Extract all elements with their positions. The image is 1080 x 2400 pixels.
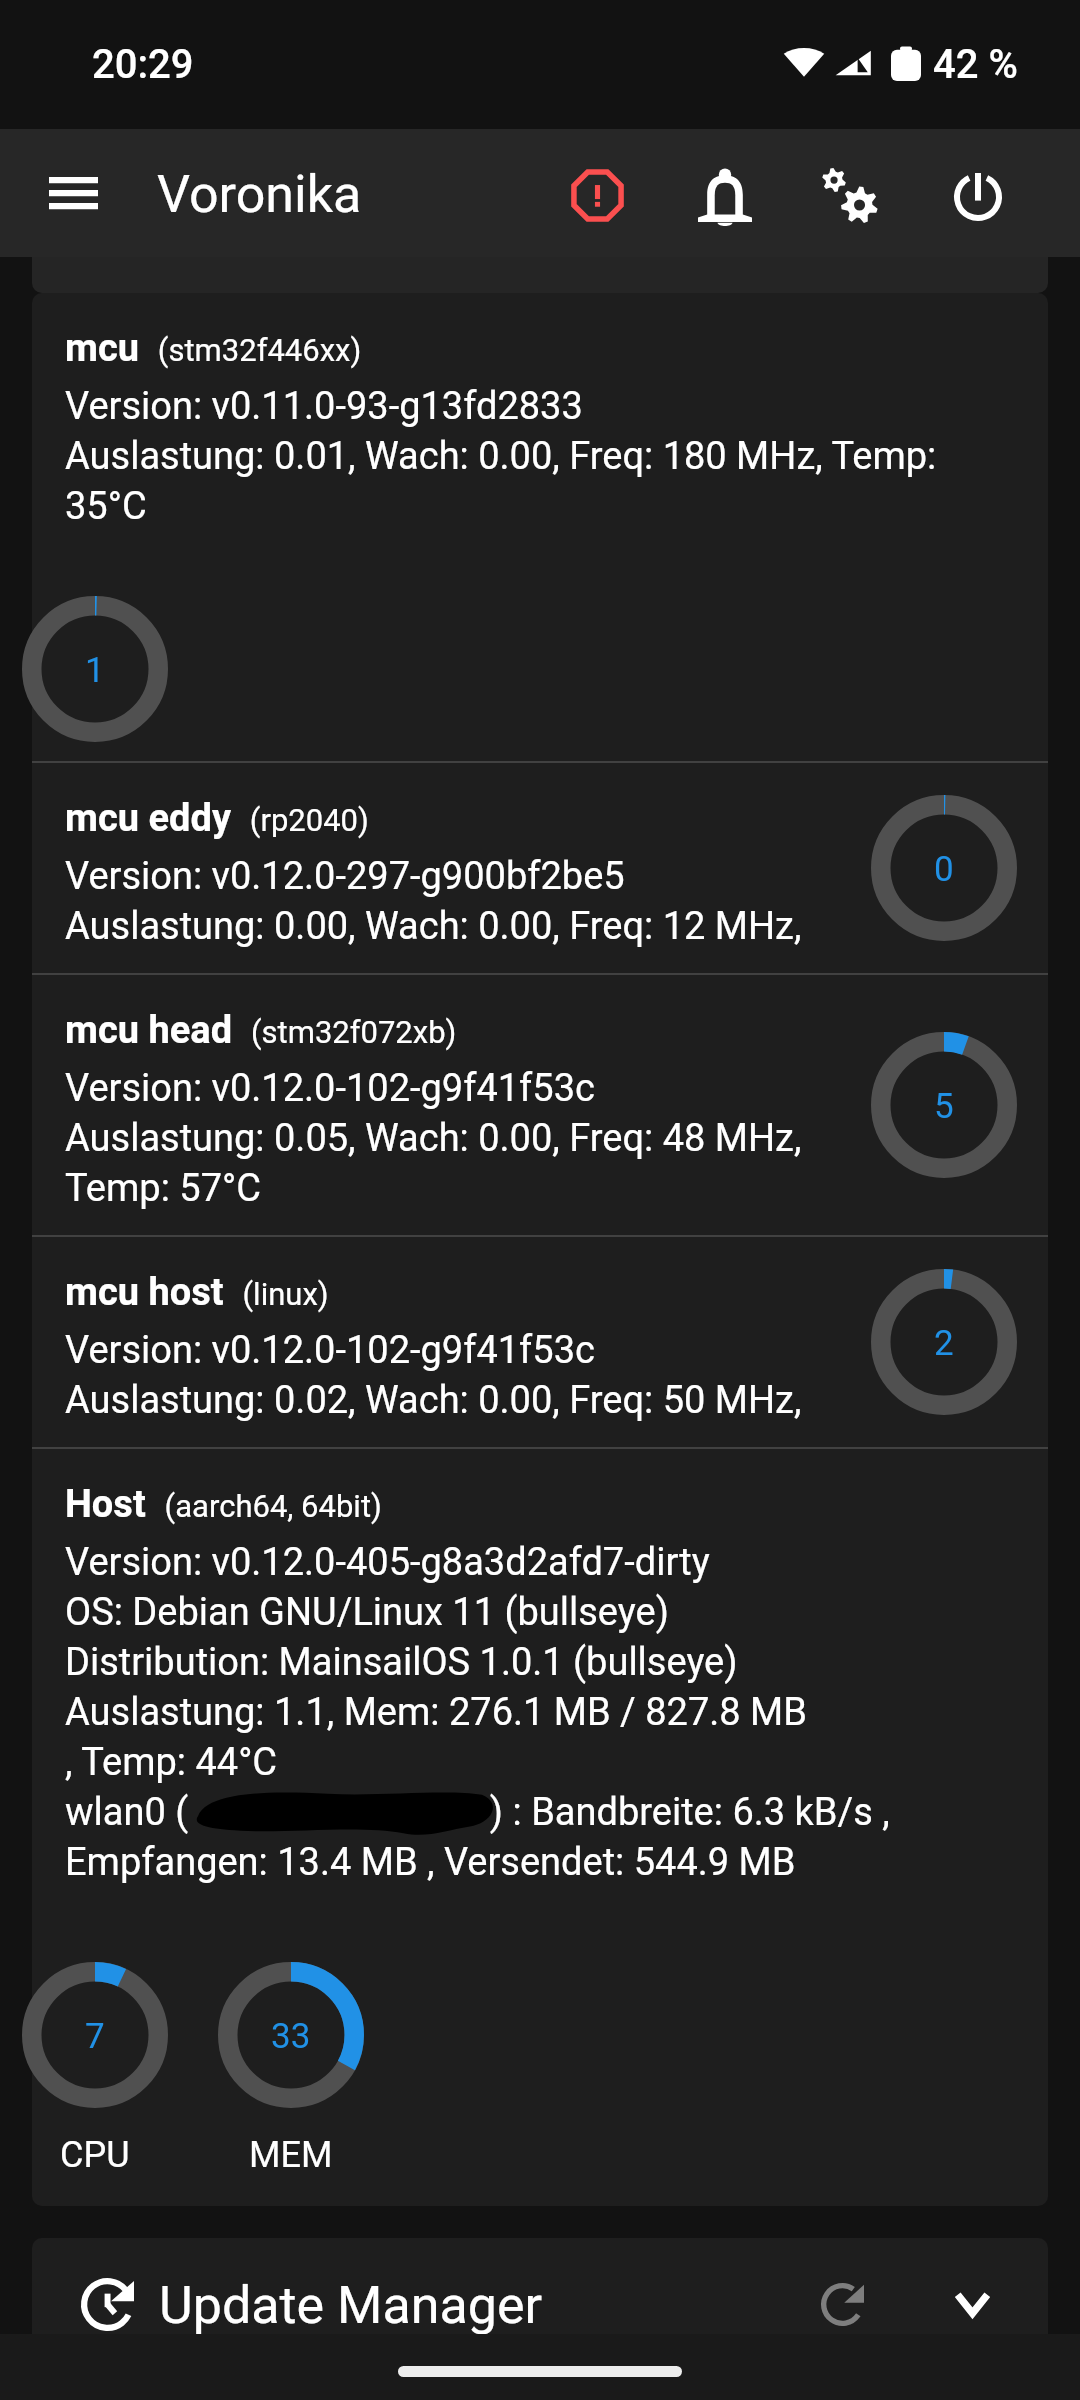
staticText: 2	[934, 1318, 954, 1364]
button[interactable]: Emergency stop	[549, 147, 646, 244]
staticText: Version: v0.12.0-102-g9f41f53c Auslastun…	[65, 1323, 802, 1423]
button[interactable]: Notifications	[676, 148, 773, 245]
staticText: 1	[85, 645, 105, 691]
staticText: wlan0 ( ) : Bandbreite: 6.3 kB/s ,	[65, 1785, 890, 1835]
staticText: CPU	[60, 2129, 130, 2177]
button[interactable]: mcu host (linux)	[32, 1237, 1048, 1447]
button[interactable]: Update Manager	[32, 2238, 1048, 2370]
button[interactable]: Menu	[25, 145, 122, 242]
staticText: Host (aarch64, 64bit)	[65, 1477, 382, 1527]
staticText: Empfangen: 13.4 MB , Versendet: 544.9 MB	[65, 1835, 796, 1885]
staticText: mcu host (linux)	[65, 1265, 329, 1315]
staticText: mcu head (stm32f072xb)	[65, 1003, 457, 1053]
staticText: Version: v0.12.0-297-g900bf2be5 Auslastu…	[65, 849, 802, 949]
button[interactable]: mcu head (stm32f072xb)	[32, 975, 1048, 1235]
staticText: Version: v0.12.0-405-g8a3d2afd7-dirty OS…	[65, 1535, 807, 1785]
button[interactable]: Expand	[930, 2262, 1014, 2346]
button[interactable]: Refresh	[800, 2262, 884, 2346]
staticText: 0	[934, 844, 954, 890]
staticText: MEM	[249, 2129, 333, 2177]
button[interactable]: Host (aarch64, 64bit)	[32, 1449, 1048, 2206]
staticText: mcu (stm32f446xx)	[65, 321, 362, 371]
staticText: Version: v0.11.0-93-g13fd2833 Auslastung…	[65, 379, 937, 529]
staticText: 7	[85, 2011, 105, 2057]
button[interactable]: mcu eddy (rp2040)	[32, 763, 1048, 973]
staticText: Version: v0.12.0-102-g9f41f53c Auslastun…	[65, 1061, 802, 1211]
button[interactable]: Power	[929, 148, 1026, 245]
button[interactable]: Settings	[801, 148, 898, 245]
staticText: 33	[271, 2011, 311, 2057]
button[interactable]: mcu (stm32f446xx)	[32, 293, 1048, 761]
staticText: Voronika	[157, 158, 362, 227]
staticText: Update Manager	[159, 2269, 543, 2338]
staticText: mcu eddy (rp2040)	[65, 791, 369, 841]
staticText: 42 %	[933, 36, 1018, 89]
staticText: 5	[934, 1081, 954, 1127]
staticText: 20:29	[92, 36, 194, 89]
